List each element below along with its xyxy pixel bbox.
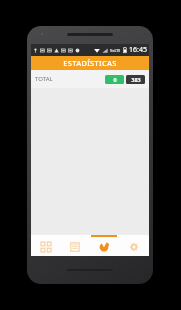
- button[interactable]: Dashboard: [31, 235, 60, 256]
- staticText: VoLTE: [110, 48, 121, 53]
- button[interactable]: TOTAL: [31, 70, 149, 88]
- staticText: 383: [131, 76, 141, 83]
- staticText: ESTADÍSTICAS: [63, 58, 117, 68]
- button[interactable]: Settings: [119, 235, 149, 256]
- button[interactable]: 0: [105, 75, 124, 84]
- button[interactable]: List: [60, 235, 89, 256]
- staticText: TOTAL: [35, 75, 53, 83]
- button[interactable]: Statistics: [89, 235, 119, 256]
- staticText: 0: [113, 76, 117, 83]
- staticText: 16:45: [129, 45, 147, 55]
- button[interactable]: 383: [126, 75, 145, 84]
